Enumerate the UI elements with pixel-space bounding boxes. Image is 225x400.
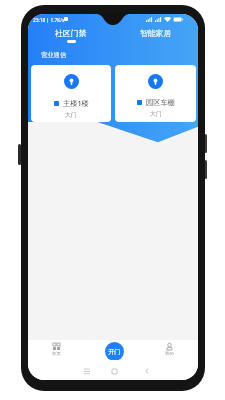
staticText: 社区门禁 <box>55 28 87 38</box>
staticText: 营业通信 <box>41 51 67 59</box>
button[interactable]: 开门 <box>105 342 124 361</box>
other: Back <box>144 368 150 374</box>
button[interactable]: 社区门禁 <box>28 28 113 43</box>
staticText: 我的 <box>165 351 174 357</box>
staticText: 开门 <box>108 348 121 356</box>
staticText: 大门 <box>65 111 77 118</box>
staticText: 首页 <box>52 351 61 357</box>
other: Home <box>112 369 117 374</box>
button[interactable]: 主楼1楼 <box>31 65 111 122</box>
staticText: 主楼1楼 <box>63 98 89 108</box>
button[interactable]: 园区车棚 <box>115 65 196 122</box>
staticText: 23:18 | 1.7K/s <box>33 17 65 24</box>
staticText: 智能家居 <box>140 28 172 38</box>
button[interactable]: 我的 <box>141 343 198 357</box>
other: Recents <box>84 368 90 374</box>
staticText: 大门 <box>150 110 162 117</box>
button[interactable]: 智能家居 <box>113 28 198 40</box>
button[interactable]: 首页 <box>28 343 84 357</box>
staticText: 园区车棚 <box>146 98 175 107</box>
